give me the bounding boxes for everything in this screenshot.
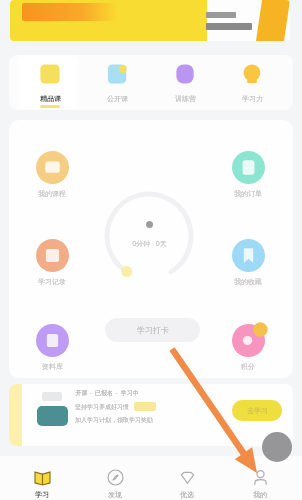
button[interactable]: 我的收藏: [211, 239, 285, 286]
button[interactable]: 积分: [211, 324, 285, 371]
staticText: 开课 · 已报名 · 学习中: [75, 389, 139, 397]
button[interactable]: 开课 · 已报名 · 学习中: [9, 384, 293, 446]
button[interactable]: Back to top: [262, 432, 292, 462]
button[interactable]: 我的: [229, 456, 291, 500]
button[interactable]: 我的课程: [15, 151, 89, 198]
staticText: 加入学习计划，领取学习奖励: [75, 416, 153, 424]
staticText: 资料库: [42, 362, 63, 371]
staticText: 学习记录: [38, 277, 66, 286]
staticText: 积分: [241, 362, 255, 371]
button[interactable]: 训练营: [159, 55, 211, 110]
button[interactable]: 学习: [11, 456, 73, 500]
button[interactable]: 资料库: [15, 324, 89, 371]
staticText: 公开课: [107, 94, 128, 103]
button[interactable]: 学习记录: [15, 239, 89, 286]
button[interactable]: 优选: [156, 456, 218, 500]
button[interactable]: 我的订单: [211, 151, 285, 198]
staticText: 学习打卡: [137, 325, 169, 335]
button[interactable]: 精品课: [24, 55, 76, 110]
staticText: 坚持学习养成好习惯: [75, 403, 129, 411]
staticText: 去学习: [247, 406, 268, 415]
staticText: 发现: [108, 490, 122, 499]
button[interactable]: 去学习: [232, 400, 282, 421]
staticText: 训练营: [175, 94, 196, 103]
button[interactable]: 发现: [84, 456, 146, 500]
button[interactable]: 公开课: [91, 55, 143, 110]
staticText: 优选: [180, 490, 194, 499]
staticText: 我的课程: [38, 189, 66, 198]
button[interactable]: [10, 0, 290, 41]
staticText: 我的收藏: [234, 277, 262, 286]
staticText: 我的: [253, 490, 267, 499]
staticText: 0分钟 0天: [132, 239, 167, 249]
button[interactable]: 学习力: [226, 55, 278, 110]
staticText: 精品课: [40, 94, 61, 103]
staticText: 我的订单: [234, 189, 262, 198]
staticText: 学习力: [242, 94, 263, 103]
staticText: 学习: [35, 490, 49, 499]
button[interactable]: 学习打卡: [105, 318, 200, 342]
